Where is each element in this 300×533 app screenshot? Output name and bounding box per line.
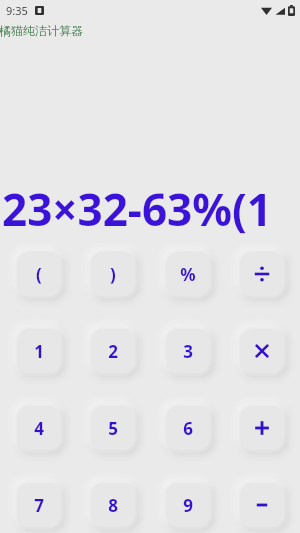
staticText: 2 bbox=[108, 340, 118, 363]
other: 1 bbox=[17, 329, 61, 373]
button[interactable]: ) bbox=[91, 252, 135, 296]
button[interactable]: % bbox=[166, 252, 210, 296]
staticText: 5 bbox=[108, 417, 118, 440]
other: 6 bbox=[166, 406, 210, 450]
other: Open parenthesis bbox=[17, 252, 61, 296]
button[interactable]: 7 bbox=[17, 483, 61, 527]
button[interactable] bbox=[240, 329, 284, 373]
staticText: 3 bbox=[183, 340, 193, 363]
button[interactable] bbox=[240, 406, 284, 450]
button[interactable]: 9 bbox=[166, 483, 210, 527]
staticText: 4 bbox=[34, 417, 44, 440]
other: Plus bbox=[240, 406, 284, 450]
other: 2 bbox=[91, 329, 135, 373]
other: Multiply bbox=[240, 329, 284, 373]
button[interactable]: 2 bbox=[91, 329, 135, 373]
staticText: ( bbox=[36, 263, 42, 286]
other: 3 bbox=[166, 329, 210, 373]
button[interactable]: 6 bbox=[166, 406, 210, 450]
staticText: 9 bbox=[183, 494, 193, 517]
button[interactable] bbox=[240, 252, 284, 296]
other: 9 bbox=[166, 483, 210, 527]
button[interactable]: ( bbox=[17, 252, 61, 296]
other: 4 bbox=[17, 406, 61, 450]
button[interactable]: 4 bbox=[17, 406, 61, 450]
staticText: 橘猫纯洁计算器 bbox=[0, 23, 83, 38]
other: 8 bbox=[91, 483, 135, 527]
staticText: 1 bbox=[34, 340, 44, 363]
button[interactable]: 5 bbox=[91, 406, 135, 450]
other: Close parenthesis bbox=[91, 252, 135, 296]
staticText: % bbox=[180, 263, 196, 286]
other: 5 bbox=[91, 406, 135, 450]
button[interactable]: 3 bbox=[166, 329, 210, 373]
button[interactable]: 1 bbox=[17, 329, 61, 373]
button[interactable] bbox=[240, 483, 284, 527]
other: Percent bbox=[166, 252, 210, 296]
staticText: ) bbox=[110, 263, 116, 286]
other: 7 bbox=[17, 483, 61, 527]
staticText: 8 bbox=[108, 494, 118, 517]
staticText: 9:35 bbox=[6, 3, 28, 18]
other: Divide bbox=[240, 252, 284, 296]
staticText: 6 bbox=[183, 417, 193, 440]
button[interactable]: 8 bbox=[91, 483, 135, 527]
staticText: 7 bbox=[34, 494, 44, 517]
staticText: 23×32-63%(1 bbox=[2, 179, 300, 239]
other: Minus bbox=[240, 483, 284, 527]
